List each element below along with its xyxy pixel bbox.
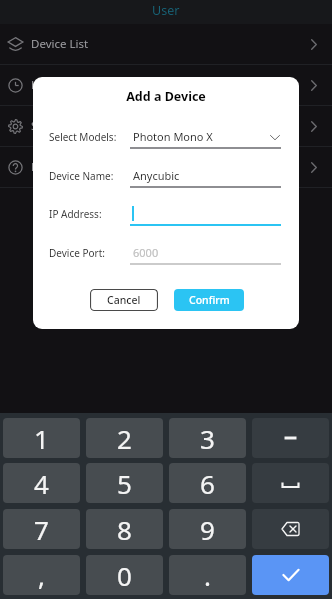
staticText: 3 [200,421,215,456]
button[interactable]: 5 [86,463,163,503]
button[interactable]: , [3,555,80,595]
staticText: Photon Mono X [133,129,213,144]
staticText: 9 [200,512,215,547]
staticText: 6000 [133,245,159,260]
button[interactable]: Device List [0,24,332,64]
staticText: Add a Device [33,88,299,105]
button[interactable]: 8 [86,509,163,549]
staticText: Select Models: [49,130,117,144]
button[interactable]: Minus [252,418,329,458]
button[interactable]: 9 [169,509,246,549]
button[interactable]: Confirm [174,289,244,311]
button[interactable]: Space [252,463,329,503]
staticText: Device Name: [49,169,114,183]
staticText: IP Address: [49,207,102,221]
button[interactable]: Enter [252,555,329,595]
staticText: User [152,2,180,19]
staticText: 1 [34,421,49,456]
button[interactable]: 1 [3,418,80,458]
staticText: Device Port: [49,246,105,260]
staticText: 7 [34,512,49,547]
staticText: 2 [117,421,132,456]
staticText: Anycubic [133,168,180,183]
button[interactable]: 0 [86,555,163,595]
button[interactable]: 4 [3,463,80,503]
button[interactable]: 3 [169,418,246,458]
button[interactable]: . [169,555,246,595]
button[interactable]: 7 [3,509,80,549]
button[interactable]: Backspace [252,509,329,549]
staticText: , [38,558,45,593]
staticText: 0 [117,558,132,593]
staticText: 4 [34,466,49,501]
staticText: 5 [117,466,132,501]
staticText: 8 [117,512,132,547]
button[interactable]: Help [0,147,332,187]
staticText: . [204,558,211,593]
button[interactable]: 6 [169,463,246,503]
staticText: Cancel [107,293,141,307]
staticText: History [31,77,70,93]
staticText: Device List [31,36,89,52]
staticText: Confirm [189,293,230,307]
staticText: 6 [200,466,215,501]
button[interactable]: 2 [86,418,163,458]
staticText: Settings [31,118,75,134]
button[interactable]: History [0,65,332,105]
button[interactable]: Settings [0,106,332,146]
button[interactable]: Cancel [90,289,158,311]
staticText: Help [31,159,57,175]
